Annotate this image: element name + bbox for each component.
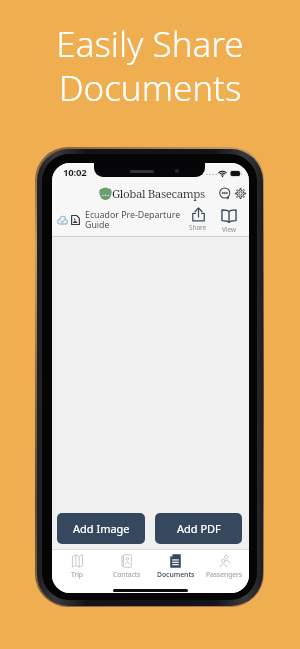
button[interactable]: Add PDF <box>155 513 242 544</box>
staticText: Share <box>189 223 207 232</box>
button[interactable]: Passengers <box>200 552 249 584</box>
staticText: View <box>222 225 236 234</box>
staticText: Passengers <box>206 570 243 579</box>
staticText: Add PDF <box>177 521 221 536</box>
button[interactable]: Contacts <box>102 552 151 584</box>
staticText: Global Basecamps <box>112 186 205 202</box>
staticText: Contacts <box>113 570 141 579</box>
button[interactable]: Trip <box>52 552 102 584</box>
staticText: Ecuador Pre-Departure Guide <box>85 209 181 230</box>
staticText: Documents <box>157 570 195 579</box>
button[interactable]: Add Image <box>57 513 145 544</box>
staticText: Trip <box>71 570 83 579</box>
button[interactable]: Documents <box>151 552 200 584</box>
button[interactable]: Messages <box>217 186 232 201</box>
staticText: Easily Share Documents <box>0 20 300 111</box>
button[interactable]: View <box>216 209 241 234</box>
staticText: 10:02 <box>63 166 87 179</box>
button[interactable]: Settings <box>233 186 248 201</box>
staticText: Add Image <box>73 521 130 536</box>
button[interactable]: Ecuador Pre-Departure Guide <box>52 204 249 237</box>
button[interactable]: Share <box>186 207 210 232</box>
